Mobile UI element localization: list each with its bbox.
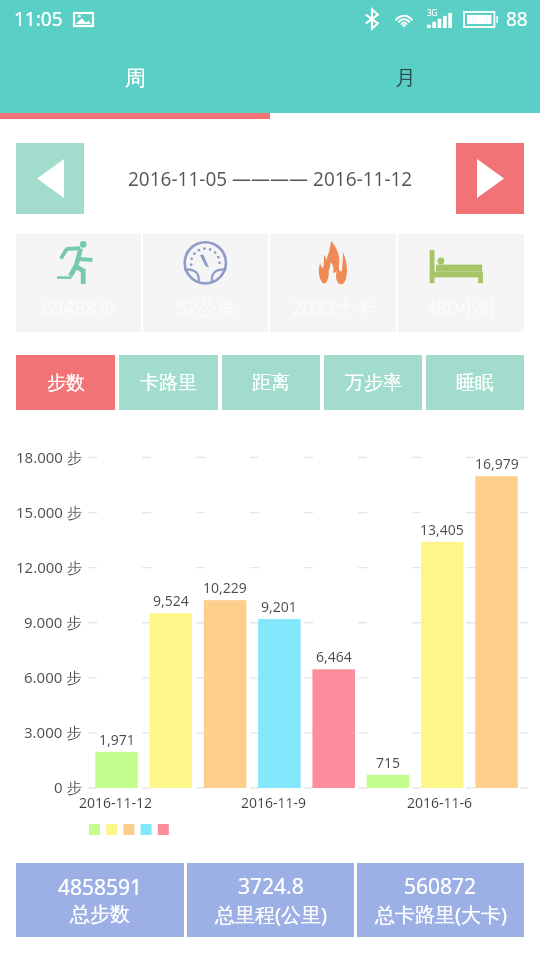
staticText: 1,971 xyxy=(99,730,135,749)
staticText: 2016-11-05 ———— 2016-11-12 xyxy=(128,166,413,192)
staticText: 周 xyxy=(125,65,146,91)
staticText: 睡眠 xyxy=(456,371,494,395)
staticText: 距离 xyxy=(252,371,290,395)
staticText: 月 xyxy=(395,65,416,91)
staticText: 卡路里 xyxy=(140,371,197,395)
button[interactable]: 万步率 xyxy=(324,355,422,410)
button[interactable]: 月 xyxy=(270,43,540,113)
button[interactable]: 560872 xyxy=(357,863,524,937)
staticText: 15.000 步 xyxy=(16,502,82,522)
staticText: 6,464 xyxy=(316,647,352,666)
staticText: 4858591 xyxy=(58,873,143,902)
staticText: 0 步 xyxy=(54,777,82,797)
staticText: 3724.8 xyxy=(238,872,304,901)
staticText: 6.000 步 xyxy=(24,667,82,687)
staticText: 11:05 xyxy=(14,6,63,32)
staticText: 步数 xyxy=(47,371,85,395)
button[interactable]: 卡路里 xyxy=(119,355,218,410)
button[interactable]: 3724.8 xyxy=(187,863,354,937)
button[interactable]: Previous week xyxy=(16,143,84,214)
staticText: 总步数 xyxy=(70,902,130,927)
button[interactable]: 2033大卡 xyxy=(270,234,396,332)
staticText: 560872 xyxy=(404,872,477,901)
staticText: 9.000 步 xyxy=(24,612,82,632)
staticText: 9,524 xyxy=(153,591,189,610)
staticText: 万步率 xyxy=(345,371,402,395)
staticText: 3G xyxy=(427,7,438,18)
staticText: 10,229 xyxy=(203,578,247,597)
button[interactable]: 69488步 xyxy=(16,234,141,332)
staticText: 16,979 xyxy=(475,454,519,473)
staticText: 2016-11-12 xyxy=(79,793,153,812)
staticText: 13,405 xyxy=(420,520,464,539)
staticText: 3.000 步 xyxy=(24,722,82,742)
staticText: 18.000 步 xyxy=(16,447,82,467)
staticText: 88 xyxy=(506,6,528,32)
button[interactable]: 距离 xyxy=(222,355,320,410)
staticText: 总卡路里(大卡) xyxy=(375,901,507,928)
button[interactable]: 480小时 xyxy=(398,234,524,332)
button[interactable]: Next week xyxy=(456,143,524,214)
staticText: 总里程(公里) xyxy=(215,901,327,928)
button[interactable]: 睡眠 xyxy=(426,355,524,410)
button[interactable]: 52公里 xyxy=(143,234,268,332)
staticText: 2016-11-6 xyxy=(407,793,473,812)
staticText: 9,201 xyxy=(261,597,297,616)
button[interactable]: 周 xyxy=(0,43,270,113)
staticText: 12.000 步 xyxy=(16,557,82,577)
button[interactable]: 步数 xyxy=(16,355,115,410)
staticText: 715 xyxy=(376,753,401,772)
button[interactable]: 4858591 xyxy=(16,863,184,937)
staticText: 2016-11-9 xyxy=(241,793,307,812)
